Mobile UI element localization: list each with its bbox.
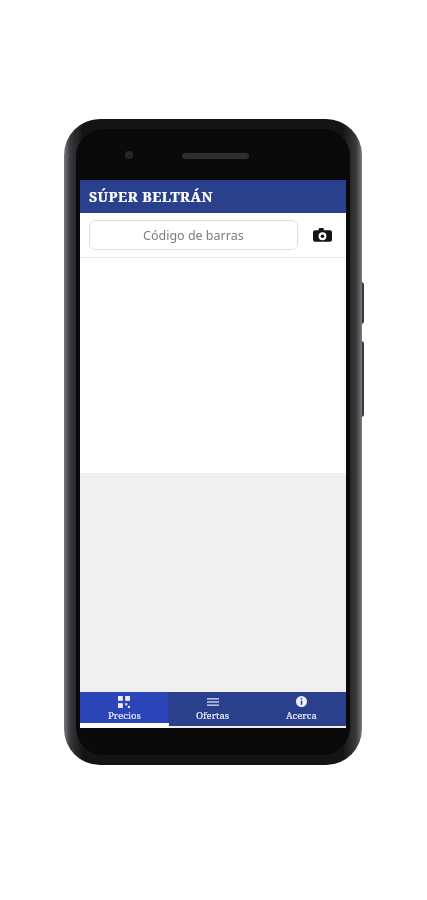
button[interactable]: Precios bbox=[80, 692, 168, 723]
button[interactable]: Código de barras bbox=[89, 220, 298, 250]
button[interactable]: Escanear código de barras bbox=[307, 220, 337, 250]
button[interactable]: Acerca bbox=[257, 692, 346, 723]
staticText: SÚPER BELTRÁN bbox=[89, 187, 214, 206]
staticText: Código de barras bbox=[143, 227, 244, 244]
button[interactable]: Ofertas bbox=[168, 692, 257, 723]
staticText: Precios bbox=[108, 709, 141, 722]
staticText: Ofertas bbox=[196, 709, 230, 722]
staticText: Acerca bbox=[286, 709, 317, 722]
